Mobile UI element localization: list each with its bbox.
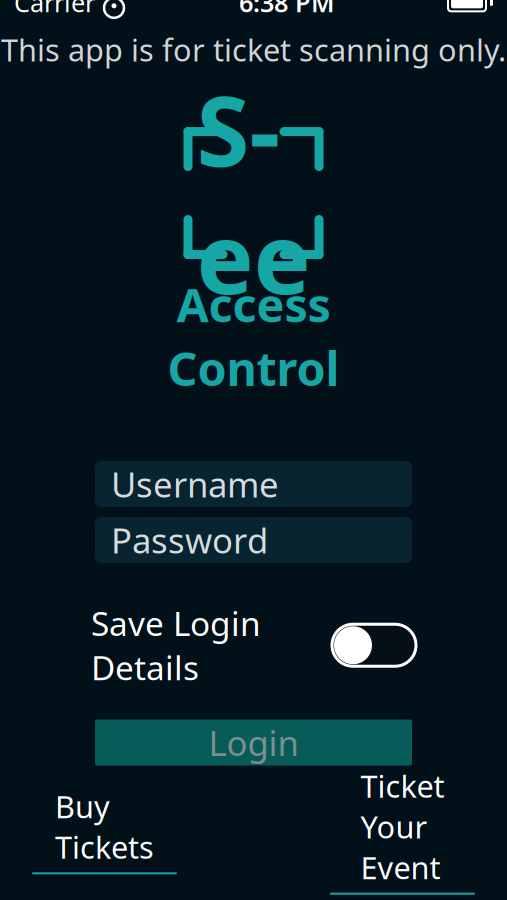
button[interactable]: Ticket Your Event: [328, 765, 477, 895]
button[interactable]: Password: [95, 517, 412, 563]
staticText: Password: [111, 517, 268, 563]
staticText: Save Login Details: [91, 601, 261, 689]
staticText: 6:38 PM: [239, 0, 335, 19]
button[interactable]: Login: [95, 719, 412, 765]
staticText: Buy Tickets: [55, 786, 154, 867]
button[interactable]: Buy Tickets: [30, 786, 179, 874]
staticText: Ticket Your Event: [360, 765, 444, 888]
staticText: See: [196, 66, 310, 321]
button[interactable]: Username: [95, 461, 412, 507]
staticText: Login: [208, 719, 298, 765]
staticText: Username: [111, 461, 279, 507]
staticText: This app is for ticket scanning only.: [1, 29, 506, 70]
staticText: Carrier: [14, 0, 95, 19]
staticText: Access: [176, 273, 330, 335]
staticText: Control: [167, 337, 339, 399]
button[interactable]: Save Login Details toggle: [332, 624, 416, 666]
